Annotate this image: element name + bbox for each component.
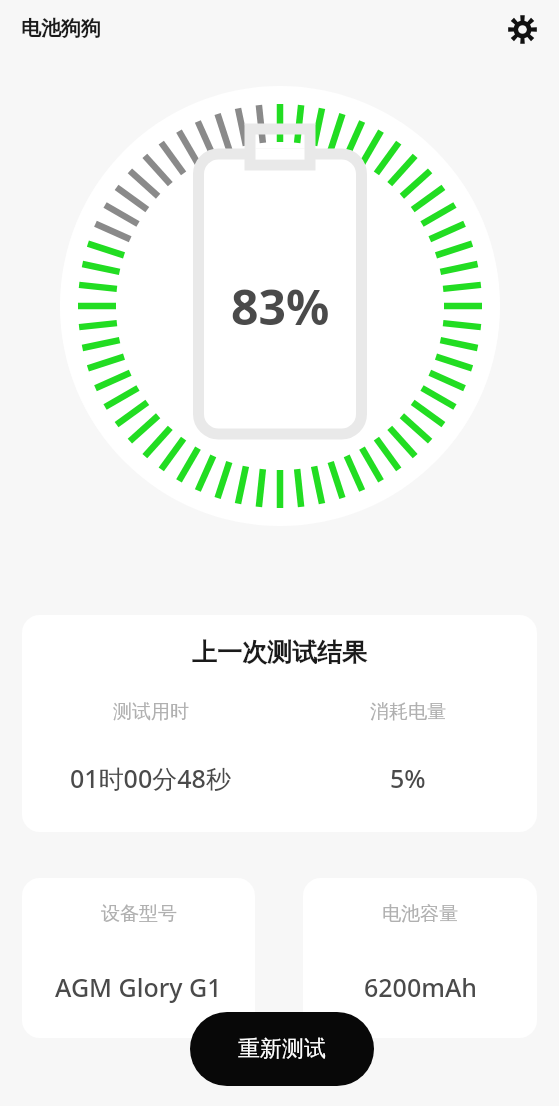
staticText: 6200mAh — [364, 970, 477, 1004]
staticText: 电池容量 — [382, 902, 458, 926]
button[interactable]: 设备型号 — [22, 878, 255, 1038]
staticText: 测试用时 — [113, 700, 189, 724]
button[interactable]: 上一次测试结果 — [22, 615, 537, 832]
button[interactable]: 电池容量 — [303, 878, 537, 1038]
staticText: 消耗电量 — [370, 700, 446, 724]
button[interactable]: 重新测试 — [190, 1012, 374, 1086]
staticText: 设备型号 — [101, 902, 177, 926]
staticText: 5% — [390, 761, 426, 795]
staticText: 上一次测试结果 — [22, 637, 537, 668]
staticText: 01时00分48秒 — [70, 761, 231, 795]
button[interactable]: Settings — [499, 6, 545, 52]
staticText: 重新测试 — [238, 1035, 326, 1063]
staticText: 83% — [231, 274, 330, 339]
staticText: 电池狗狗 — [21, 16, 101, 41]
staticText: AGM Glory G1 — [55, 970, 222, 1004]
